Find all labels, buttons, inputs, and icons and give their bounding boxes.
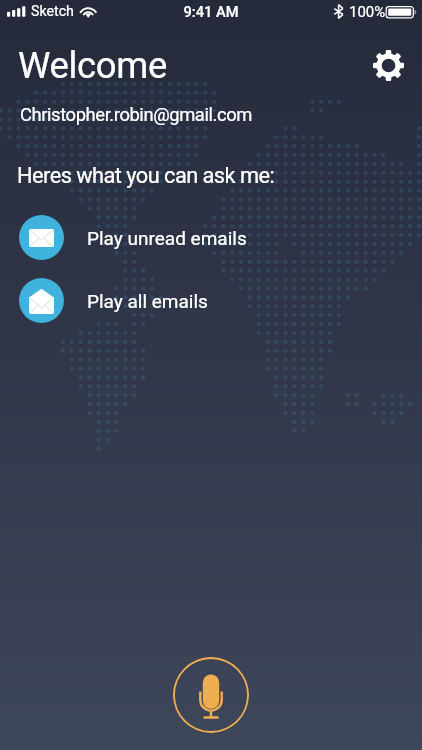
- staticText: 100%: [349, 3, 386, 21]
- staticText: Welcome: [18, 44, 167, 87]
- button[interactable]: Microphone: [173, 657, 249, 733]
- staticText: Christopher.robin@gmail.com: [20, 104, 252, 126]
- staticText: Play all emails: [87, 290, 208, 312]
- staticText: Sketch: [31, 3, 74, 20]
- button[interactable]: Play all emails: [0, 272, 422, 329]
- button[interactable]: Play unread emails: [0, 209, 422, 266]
- staticText: Heres what you can ask me:: [17, 163, 275, 189]
- button[interactable]: Settings: [371, 48, 406, 83]
- staticText: Play unread emails: [87, 227, 247, 249]
- staticText: 9:41 AM: [0, 3, 422, 20]
